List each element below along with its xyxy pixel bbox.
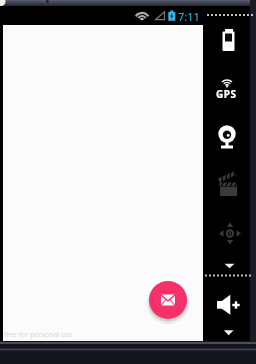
staticText: GPS — [216, 87, 237, 101]
button[interactable] — [213, 215, 243, 247]
staticText: 7:11 — [178, 9, 200, 24]
button[interactable] — [213, 290, 247, 320]
button[interactable] — [215, 25, 243, 55]
button[interactable] — [213, 120, 243, 152]
button[interactable] — [215, 73, 243, 101]
staticText: free for personal use — [4, 330, 73, 340]
button[interactable] — [213, 168, 243, 200]
button[interactable] — [149, 281, 187, 319]
